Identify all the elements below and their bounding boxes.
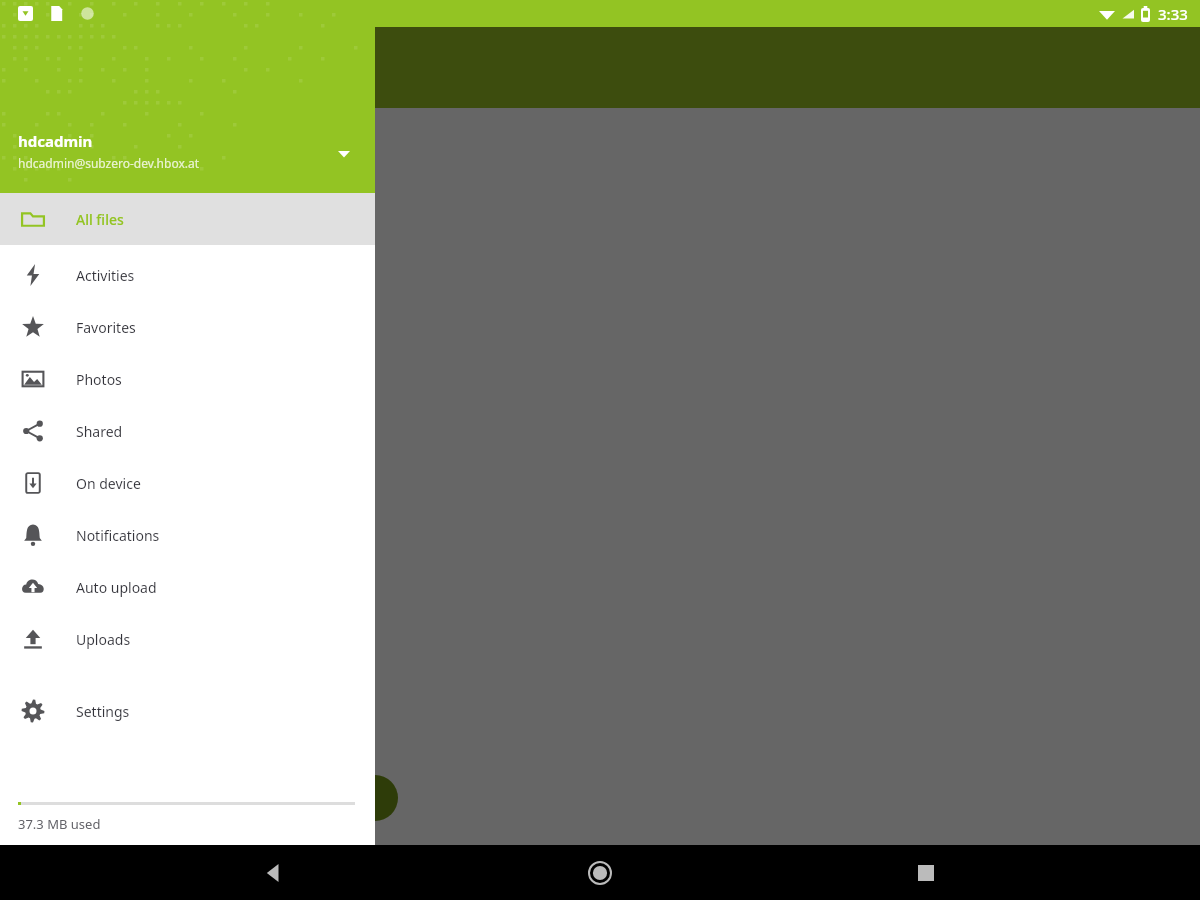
button[interactable]: Settings bbox=[0, 685, 375, 737]
staticText: 3:33 bbox=[1158, 4, 1188, 24]
staticText: Activities bbox=[76, 266, 135, 285]
button[interactable]: Notifications bbox=[0, 509, 375, 561]
staticText: Uploads bbox=[76, 630, 131, 649]
staticText: All files bbox=[76, 210, 124, 229]
staticText: Auto upload bbox=[76, 578, 157, 597]
button[interactable]: Uploads bbox=[0, 613, 375, 665]
staticText: On device bbox=[76, 474, 141, 493]
button[interactable]: Photos bbox=[0, 353, 375, 405]
staticText: Favorites bbox=[76, 318, 136, 337]
button[interactable]: Favorites bbox=[0, 301, 375, 353]
staticText: Photos bbox=[76, 370, 122, 389]
staticText: 37.3 MB used bbox=[18, 815, 101, 833]
button[interactable]: Auto upload bbox=[0, 561, 375, 613]
staticText: Notifications bbox=[76, 526, 160, 545]
button[interactable]: Home bbox=[572, 845, 628, 900]
button[interactable]: All files bbox=[0, 193, 375, 245]
staticText: Settings bbox=[76, 702, 130, 721]
button[interactable]: On device bbox=[0, 457, 375, 509]
button[interactable]: Shared bbox=[0, 405, 375, 457]
button[interactable]: Back bbox=[246, 845, 302, 900]
staticText: Shared bbox=[76, 422, 123, 441]
button[interactable]: Recent apps bbox=[898, 845, 954, 900]
button[interactable]: Switch account bbox=[331, 141, 357, 167]
button[interactable]: Add bbox=[352, 775, 398, 821]
staticText: hdcadmin@subzero-dev.hbox.at bbox=[18, 155, 200, 171]
staticText: hdcadmin bbox=[18, 131, 93, 151]
button[interactable]: Activities bbox=[0, 249, 375, 301]
